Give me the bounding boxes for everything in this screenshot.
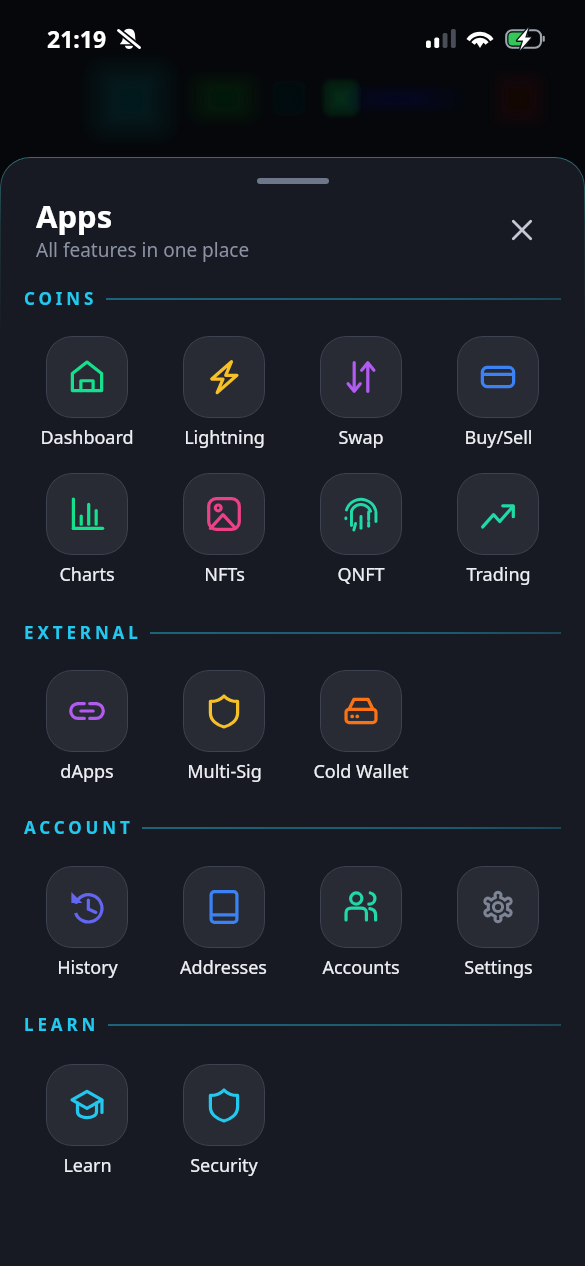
staticText: Addresses (180, 955, 267, 980)
staticText: Trading (466, 562, 531, 587)
staticText: Buy/Sell (464, 425, 533, 450)
staticText: Dashboard (40, 425, 134, 450)
staticText: 21:19 (47, 23, 107, 54)
button[interactable]: Multi-Sig (183, 670, 265, 784)
button[interactable]: Accounts (320, 866, 402, 980)
staticText: COINS (24, 287, 98, 310)
button[interactable]: Security (183, 1064, 265, 1178)
button[interactable]: Close (500, 208, 544, 252)
button[interactable]: Settings (457, 866, 539, 980)
staticText: History (57, 955, 118, 980)
staticText: ACCOUNT (24, 816, 134, 839)
button[interactable]: dApps (46, 670, 128, 784)
button[interactable]: Lightning (183, 336, 265, 450)
button[interactable]: Buy/Sell (457, 336, 539, 450)
button[interactable]: History (46, 866, 128, 980)
staticText: All features in one place (36, 237, 250, 263)
button[interactable]: Trading (457, 473, 539, 587)
staticText: Apps (36, 195, 113, 237)
staticText: Multi-Sig (187, 759, 262, 784)
button[interactable]: NFTs (183, 473, 265, 587)
button[interactable]: Cold Wallet (313, 670, 409, 784)
staticText: Cold Wallet (313, 759, 409, 784)
staticText: Learn (63, 1153, 112, 1178)
button[interactable]: Addresses (180, 866, 267, 980)
staticText: dApps (60, 759, 114, 784)
button[interactable]: QNFT (320, 473, 402, 587)
staticText: Settings (464, 955, 533, 980)
staticText: EXTERNAL (24, 621, 142, 644)
staticText: Lightning (184, 425, 265, 450)
button[interactable]: Charts (46, 473, 128, 587)
staticText: Accounts (322, 955, 400, 980)
button[interactable]: Swap (320, 336, 402, 450)
staticText: LEARN (24, 1013, 100, 1036)
staticText: QNFT (337, 562, 385, 587)
staticText: Swap (338, 425, 384, 450)
button[interactable]: Dashboard (40, 336, 134, 450)
staticText: Charts (59, 562, 115, 587)
staticText: Security (190, 1153, 258, 1178)
staticText: NFTs (204, 562, 245, 587)
button[interactable]: Learn (46, 1064, 128, 1178)
